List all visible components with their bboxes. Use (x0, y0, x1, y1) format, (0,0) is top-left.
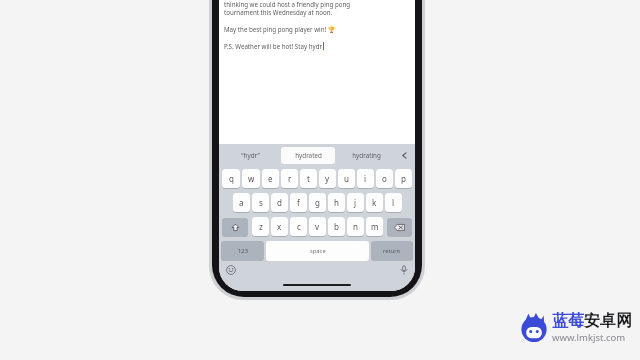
button[interactable]: c (290, 217, 307, 236)
button[interactable]: Backspace (387, 218, 412, 237)
button[interactable]: u (338, 169, 355, 188)
button[interactable]: k (366, 193, 383, 212)
button[interactable]: b (328, 217, 345, 236)
staticText: 蓝莓 (552, 311, 584, 331)
button[interactable]: x (271, 217, 288, 236)
staticText: space (310, 247, 326, 255)
staticText: t (307, 173, 310, 184)
staticText: w (248, 173, 255, 184)
button[interactable]: i (357, 169, 374, 188)
staticText: thinking we could host a friendly ping p… (224, 0, 351, 8)
staticText: l (392, 197, 395, 208)
button[interactable]: h (328, 193, 345, 212)
staticText: o (382, 173, 387, 184)
staticText: hydrating (352, 151, 381, 160)
staticText: u (344, 173, 349, 184)
button[interactable]: z (252, 217, 269, 236)
button[interactable]: v (309, 217, 326, 236)
staticText: y (325, 173, 330, 184)
staticText: v (315, 221, 320, 232)
staticText: h (334, 197, 339, 208)
button[interactable]: 123 (221, 241, 264, 261)
button[interactable]: r (281, 169, 298, 188)
button[interactable]: e (262, 169, 279, 188)
button[interactable]: s (252, 193, 269, 212)
button[interactable]: p (395, 169, 412, 188)
button[interactable]: l (385, 193, 402, 212)
staticText: g (315, 197, 320, 208)
button[interactable]: j (347, 193, 364, 212)
staticText: May the best ping pong player win! 🏆 (224, 25, 336, 33)
button[interactable]: Shift (222, 218, 248, 237)
staticText: www.lmkjst.com (552, 331, 626, 344)
staticText: k (372, 197, 377, 208)
button[interactable]: a (233, 193, 250, 212)
staticText: “hydr” (241, 151, 260, 160)
staticText: n (353, 221, 358, 232)
staticText: e (268, 173, 273, 184)
staticText: 安卓网 (584, 311, 632, 331)
staticText: a (239, 197, 244, 208)
staticText: f (297, 197, 300, 208)
staticText: p (401, 173, 406, 184)
button[interactable]: f (290, 193, 307, 212)
button[interactable]: y (319, 169, 336, 188)
button[interactable]: o (376, 169, 393, 188)
staticText: d (277, 197, 282, 208)
staticText: z (259, 221, 263, 232)
button[interactable]: q (222, 169, 240, 188)
button[interactable]: t (300, 169, 317, 188)
staticText: b (334, 221, 339, 232)
staticText: tournament this Wednesday at noon. (224, 8, 333, 16)
button[interactable]: m (366, 217, 383, 236)
staticText: return (383, 247, 401, 255)
button[interactable]: Emoji (225, 264, 236, 275)
staticText: q (229, 173, 234, 184)
staticText: j (354, 197, 357, 208)
staticText: s (259, 197, 263, 208)
button[interactable]: w (242, 169, 260, 188)
button[interactable]: Dictation (398, 264, 409, 275)
staticText: hydrated (295, 151, 322, 160)
staticText: P.S. Weather will be hot! Stay hydr (224, 42, 323, 50)
staticText: i (364, 173, 367, 184)
button[interactable]: Hide suggestions (395, 144, 413, 167)
button[interactable]: hydrated (281, 147, 335, 164)
staticText: x (277, 221, 282, 232)
button[interactable]: space (266, 241, 369, 261)
button[interactable]: hydrating (339, 147, 393, 164)
button[interactable]: “hydr” (223, 147, 277, 164)
staticText: m (371, 221, 379, 232)
button[interactable]: d (271, 193, 288, 212)
button[interactable]: g (309, 193, 326, 212)
button[interactable]: n (347, 217, 364, 236)
staticText: r (288, 173, 292, 184)
staticText: c (297, 221, 301, 232)
staticText: 123 (238, 247, 248, 255)
button[interactable]: return (371, 241, 413, 261)
